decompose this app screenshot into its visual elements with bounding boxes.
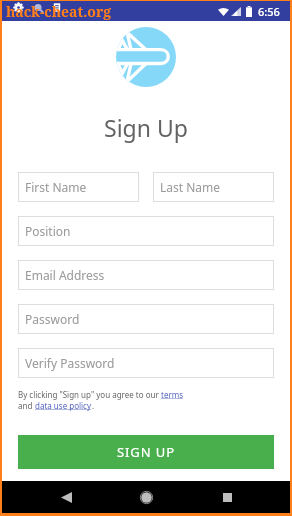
staticText: and <box>18 400 35 411</box>
staticText: SIGN UP <box>117 443 175 461</box>
staticText: Verify Password <box>25 355 115 371</box>
button[interactable]: Recents <box>210 481 244 513</box>
staticText: Password <box>25 311 80 327</box>
staticText: By clicking "Sign up" you agree to our <box>18 389 161 400</box>
button[interactable]: Last Name <box>153 172 274 202</box>
staticText: Position <box>25 223 71 239</box>
button[interactable]: Back <box>49 481 83 513</box>
staticText: 6:56 <box>258 4 280 19</box>
button[interactable]: Position <box>18 216 274 246</box>
button[interactable]: SIGN UP <box>18 435 274 469</box>
button[interactable]: terms <box>161 389 184 400</box>
staticText: Last Name <box>160 179 221 195</box>
button[interactable]: data use policy <box>35 400 92 411</box>
staticText: hack-cheat.org <box>6 2 112 21</box>
button[interactable]: Password <box>18 304 274 334</box>
staticText: Email Address <box>25 267 105 283</box>
button[interactable]: Verify Password <box>18 348 274 378</box>
button[interactable]: First Name <box>18 172 139 202</box>
staticText: Sign Up <box>104 112 188 143</box>
staticText: . <box>92 400 95 411</box>
staticText: First Name <box>25 179 87 195</box>
button[interactable]: Home <box>129 481 163 513</box>
button[interactable]: Email Address <box>18 260 274 290</box>
